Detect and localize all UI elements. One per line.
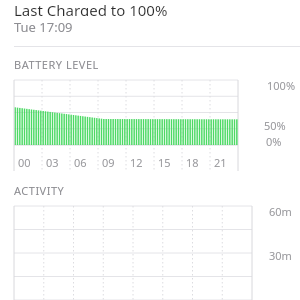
staticText: ACTIVITY [14,183,65,198]
button[interactable]: Last Charged to 100% [0,0,300,16]
staticText: 18 [186,155,199,170]
staticText: 12 [130,155,143,170]
staticText: 50% [264,118,286,133]
staticText: 100% [267,78,296,93]
staticText: Tue 17:09 [14,18,73,36]
staticText: BATTERY LEVEL [14,57,99,72]
staticText: 60m [269,204,292,219]
staticText: 15 [158,155,171,170]
staticText: Last Charged to 100% [14,0,168,16]
staticText: 03 [46,155,59,170]
staticText: 30m [269,248,292,263]
button[interactable]: 100% [0,78,300,173]
staticText: 09 [102,155,115,170]
button[interactable]: 60m [0,204,300,300]
staticText: 00 [18,155,31,170]
staticText: 0% [266,134,282,149]
staticText: 06 [74,155,87,170]
staticText: 21 [214,155,227,170]
